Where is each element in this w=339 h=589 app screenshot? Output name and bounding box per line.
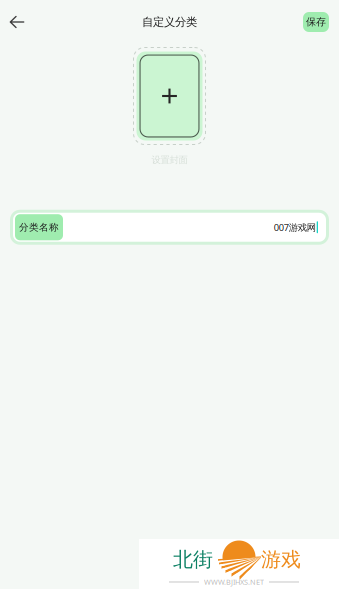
staticText: 游戏 <box>261 547 301 572</box>
staticText: 007游戏网 <box>274 221 316 234</box>
staticText: 设置封面 <box>151 154 187 166</box>
staticText: 北街 <box>173 547 213 572</box>
staticText: 自定义分类 <box>142 15 197 29</box>
button[interactable]: 设置封面 <box>133 47 206 166</box>
button[interactable]: 分类名称 <box>10 210 329 245</box>
staticText: 分类名称 <box>19 221 59 233</box>
staticText: 保存 <box>306 16 326 28</box>
button[interactable]: 保存 <box>303 12 329 32</box>
staticText: WWW.BJIHXS.NET <box>204 577 264 587</box>
button[interactable]: Back <box>0 1 34 43</box>
